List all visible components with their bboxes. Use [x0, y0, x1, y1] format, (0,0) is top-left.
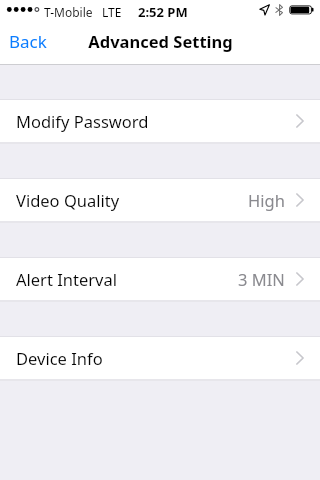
- staticText: 2:52 PM: [138, 3, 188, 21]
- button[interactable]: Video Quality: [0, 178, 320, 221]
- staticText: 3 MIN: [238, 268, 285, 290]
- button[interactable]: Back: [0, 22, 57, 61]
- staticText: Modify Password: [16, 110, 149, 132]
- staticText: Advanced Setting: [88, 30, 233, 52]
- staticText: Video Quality: [16, 189, 120, 211]
- staticText: Device Info: [16, 347, 103, 369]
- staticText: Alert Interval: [16, 268, 117, 290]
- staticText: Back: [9, 30, 47, 53]
- staticText: High: [248, 189, 285, 211]
- button[interactable]: Modify Password: [0, 99, 320, 142]
- staticText: LTE: [102, 4, 122, 20]
- button[interactable]: Alert Interval: [0, 257, 320, 300]
- button[interactable]: Device Info: [0, 336, 320, 379]
- staticText: T-Mobile: [44, 4, 93, 20]
